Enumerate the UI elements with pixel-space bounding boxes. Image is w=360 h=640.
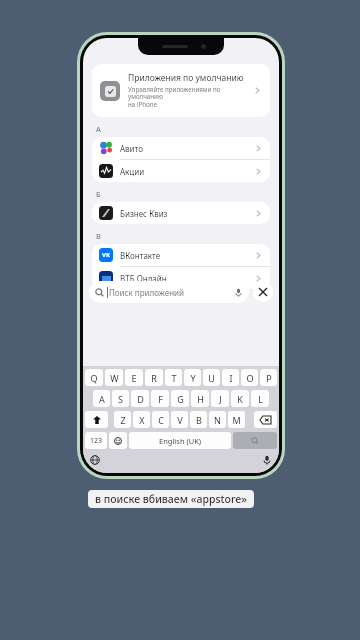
button[interactable]: Q (85, 369, 103, 386)
staticText: Q (90, 372, 98, 384)
staticText: N (214, 414, 221, 426)
staticText: Авито (120, 143, 143, 154)
button[interactable]: Приложения по умолчанию (92, 64, 270, 117)
staticText: VK (102, 251, 110, 259)
button[interactable]: H (191, 390, 209, 407)
button[interactable]: K (231, 390, 249, 407)
staticText: Б (96, 189, 101, 199)
staticText: T (171, 372, 177, 384)
staticText: Акции (120, 166, 145, 177)
button[interactable]: Y (184, 369, 201, 386)
staticText: Z (120, 414, 126, 426)
button[interactable]: F (151, 390, 169, 407)
button[interactable]: Акции (92, 160, 270, 182)
button[interactable]: M (228, 411, 245, 428)
staticText: Бизнес Квиз (120, 208, 168, 219)
staticText: в поиске вбиваем «appstore» (95, 492, 247, 506)
button[interactable]: J (211, 390, 229, 407)
button[interactable]: D (131, 390, 149, 407)
staticText: B (196, 414, 202, 426)
button[interactable]: Clear search (253, 282, 273, 302)
staticText: U (208, 372, 215, 384)
button[interactable]: I (222, 369, 239, 386)
button[interactable]: Change keyboard (89, 454, 101, 466)
staticText: H (197, 393, 204, 405)
staticText: V (177, 414, 183, 426)
staticText: В (96, 231, 101, 241)
staticText: L (258, 393, 263, 405)
staticText: А (96, 124, 101, 134)
button[interactable]: W (105, 369, 123, 386)
staticText: D (137, 393, 144, 405)
button[interactable]: Search (233, 432, 277, 449)
button[interactable]: 123 (85, 432, 107, 449)
button[interactable]: C (152, 411, 169, 428)
staticText: M (232, 414, 241, 426)
button[interactable]: Поиск приложений (89, 281, 249, 303)
button[interactable]: G (171, 390, 189, 407)
button[interactable]: ВТБ Онлайн (92, 267, 270, 289)
staticText: O (246, 372, 254, 384)
staticText: W (110, 372, 119, 384)
button[interactable]: Бизнес Квиз (92, 202, 270, 224)
button[interactable]: U (203, 369, 220, 386)
staticText: English (UK) (159, 436, 202, 446)
button[interactable]: Emoji (109, 432, 127, 449)
button[interactable]: VK (92, 244, 270, 266)
staticText: Приложения по умолчанию (128, 72, 244, 84)
button[interactable]: V (171, 411, 188, 428)
staticText: Поиск приложений (109, 287, 184, 298)
staticText: J (219, 393, 222, 405)
staticText: A (99, 393, 105, 405)
button[interactable]: English (UK) (129, 432, 231, 449)
staticText: C (158, 414, 164, 426)
button[interactable]: Backspace (254, 411, 277, 428)
button[interactable]: B (190, 411, 207, 428)
staticText: P (266, 372, 272, 384)
staticText: X (139, 414, 145, 426)
staticText: 123 (90, 436, 103, 446)
button[interactable]: S (112, 390, 129, 407)
button[interactable]: P (260, 369, 277, 386)
staticText: I (229, 372, 233, 384)
staticText: K (237, 393, 243, 405)
staticText: S (118, 393, 123, 405)
staticText: ВКонтакте (120, 250, 161, 261)
staticText: R (151, 372, 157, 384)
button[interactable]: L (251, 390, 269, 407)
button[interactable]: R (145, 369, 163, 386)
button[interactable]: E (125, 369, 143, 386)
button[interactable]: Z (114, 411, 131, 428)
staticText: G (177, 393, 184, 405)
staticText: Управляйте приложениями по умолчанию на … (128, 85, 255, 109)
staticText: E (131, 372, 137, 384)
button[interactable]: O (241, 369, 258, 386)
button[interactable]: N (209, 411, 226, 428)
button[interactable]: Dictation (261, 454, 273, 466)
button[interactable]: A (93, 390, 110, 407)
button[interactable]: X (133, 411, 150, 428)
button[interactable]: T (165, 369, 182, 386)
staticText: F (158, 393, 163, 405)
button[interactable]: Авито (92, 137, 270, 159)
button[interactable]: в поиске вбиваем «appstore» (95, 492, 247, 506)
button[interactable]: Shift (85, 411, 108, 428)
staticText: Y (190, 372, 196, 384)
staticText: ВТБ Онлайн (120, 273, 167, 284)
